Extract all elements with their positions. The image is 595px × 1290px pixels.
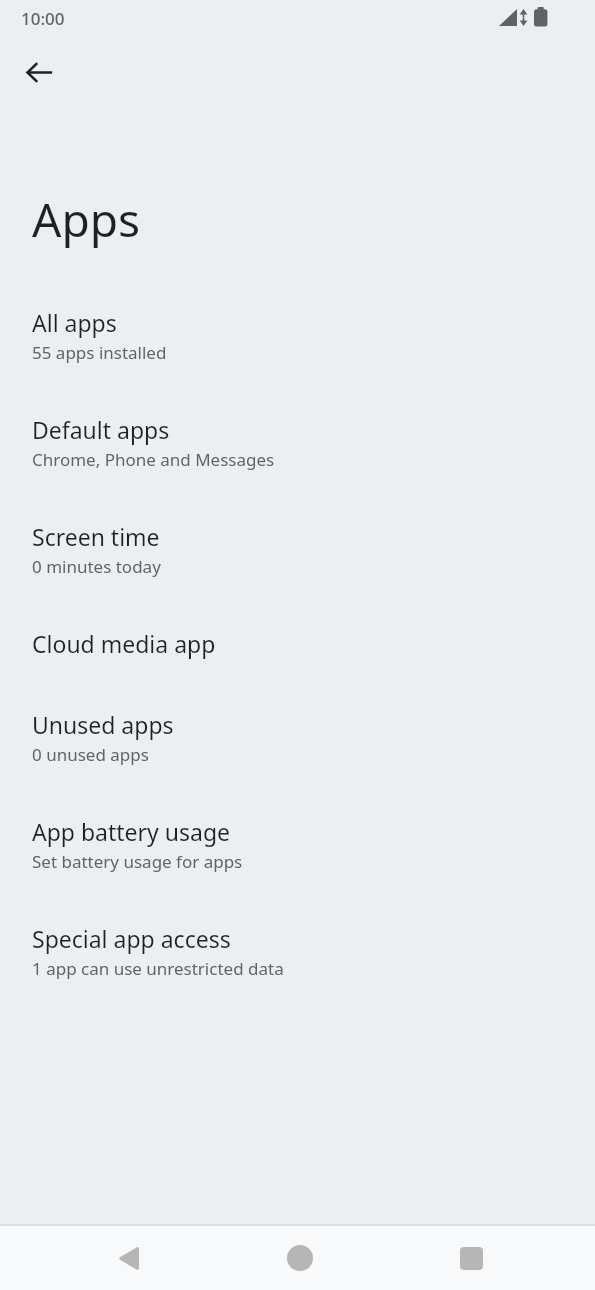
button[interactable]: Default apps (0, 394, 595, 486)
staticText: 1 app can use unrestricted data (32, 957, 284, 980)
staticText: 10:00 (21, 7, 65, 30)
staticText: Special app access (32, 923, 231, 954)
button[interactable]: Unused apps (0, 689, 595, 781)
staticText: Set battery usage for apps (32, 850, 243, 873)
button[interactable]: Back (11, 44, 67, 100)
staticText: Chrome, Phone and Messages (32, 448, 275, 471)
button[interactable]: Recent apps (443, 1230, 499, 1286)
staticText: 55 apps installed (32, 341, 167, 364)
staticText: Screen time (32, 521, 160, 552)
button[interactable]: Screen time (0, 501, 595, 593)
staticText: All apps (32, 307, 117, 338)
staticText: Cloud media app (32, 628, 216, 659)
button[interactable]: App battery usage (0, 796, 595, 888)
staticText: Default apps (32, 414, 170, 445)
staticText: Apps (32, 188, 141, 251)
staticText: App battery usage (32, 816, 231, 847)
staticText: 0 minutes today (32, 555, 161, 578)
button[interactable]: Cloud media app (0, 608, 595, 676)
staticText: Unused apps (32, 709, 174, 740)
button[interactable]: Home (272, 1230, 328, 1286)
button[interactable]: Special app access (0, 903, 595, 995)
button[interactable]: All apps (0, 287, 595, 379)
button[interactable]: Back (101, 1230, 157, 1286)
staticText: 0 unused apps (32, 743, 149, 766)
